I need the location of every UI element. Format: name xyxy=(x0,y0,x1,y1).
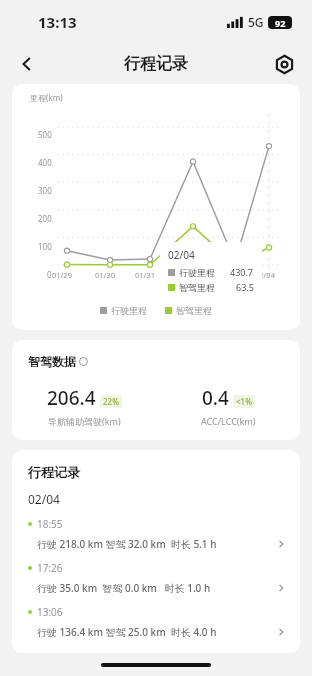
staticText: 行驶里程 xyxy=(111,305,147,316)
staticText: 01/31 xyxy=(135,270,155,280)
staticText: 里程(km) xyxy=(30,92,63,103)
staticText: 92 xyxy=(275,17,286,29)
staticText: 5G xyxy=(248,14,264,30)
staticText: 430.7 xyxy=(230,266,254,278)
staticText: 行驶 218.0 km 智驾 32.0 km 时长 5.1 h xyxy=(37,537,217,551)
staticText: 02/04 xyxy=(28,491,60,507)
button[interactable]: 13:06 xyxy=(12,595,300,639)
staticText: 导航辅助驾驶(km) xyxy=(48,415,121,427)
staticText: 200 xyxy=(38,213,52,224)
staticText: 300 xyxy=(38,185,52,196)
button[interactable]: Back xyxy=(10,47,44,81)
staticText: 0 xyxy=(47,269,52,280)
staticText: 行程记录 xyxy=(28,464,80,480)
staticText: 22% xyxy=(103,396,119,407)
staticText: 智驾里程 xyxy=(179,282,215,293)
staticText: 13:06 xyxy=(37,605,63,619)
staticText: 智驾里程 xyxy=(176,305,212,316)
staticText: 18:55 xyxy=(37,517,63,531)
staticText: 01/29 xyxy=(52,270,72,280)
staticText: <1% xyxy=(236,396,252,407)
staticText: 0.4 xyxy=(202,385,229,411)
button[interactable]: 18:55 xyxy=(12,507,300,551)
button[interactable]: 17:26 xyxy=(12,551,300,595)
staticText: 02/04 xyxy=(255,270,275,280)
staticText: 行驶 136.4 km 智驾 25.0 km 时长 4.0 h xyxy=(37,625,217,639)
staticText: 行驶里程 xyxy=(179,267,215,278)
staticText: 13:13 xyxy=(38,12,77,32)
staticText: 智驾数据 xyxy=(28,354,76,369)
staticText: 17:26 xyxy=(37,561,63,575)
staticText: 400 xyxy=(38,157,52,168)
staticText: 02/04 xyxy=(168,248,195,262)
staticText: 行驶 35.0 km 智驾 0.0 km 时长 1.0 h xyxy=(37,581,211,595)
staticText: 206.4 xyxy=(47,385,96,411)
button[interactable]: Settings xyxy=(268,48,300,80)
staticText: 01/30 xyxy=(95,270,115,280)
staticText: 500 xyxy=(38,129,52,140)
staticText: 行程记录 xyxy=(124,54,188,74)
staticText: ACC/LCC(km) xyxy=(201,415,256,427)
staticText: 100 xyxy=(38,241,52,252)
staticText: 63.5 xyxy=(236,281,254,293)
